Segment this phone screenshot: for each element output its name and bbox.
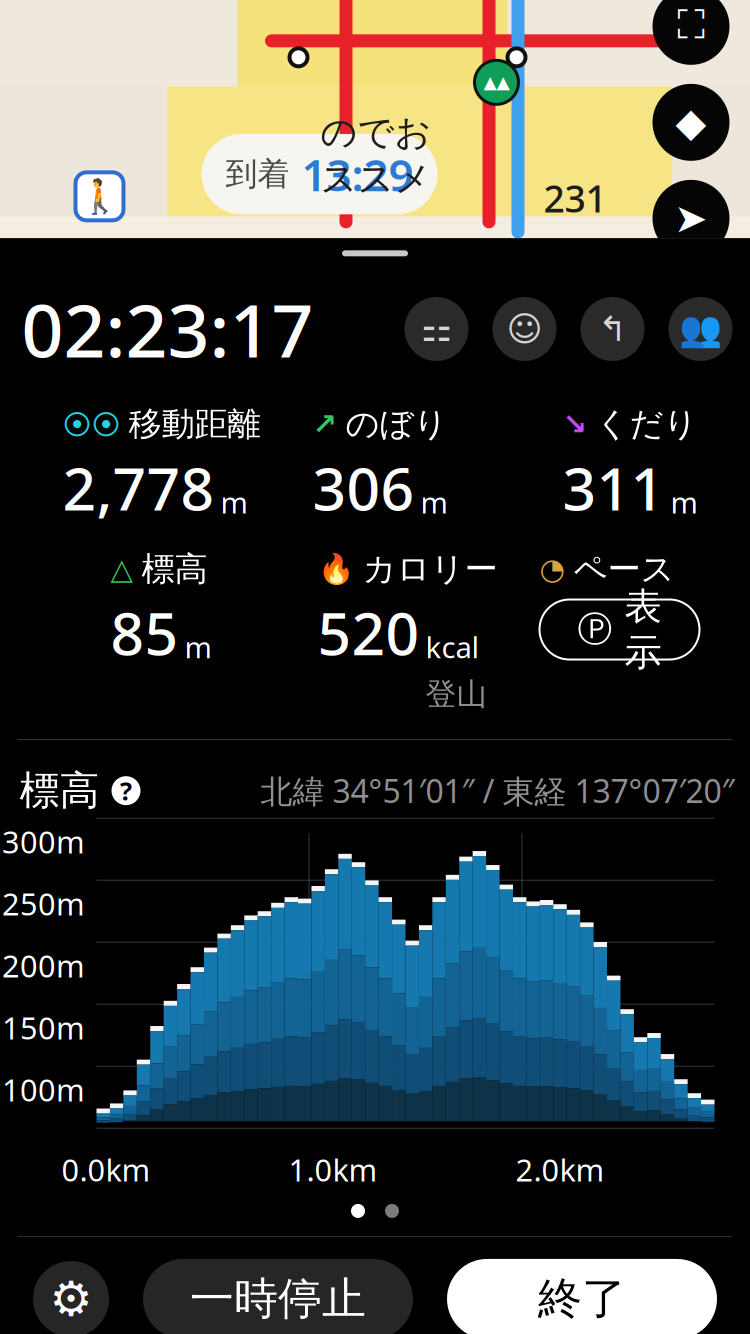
button[interactable]: Ⓟ [539,599,699,659]
button[interactable]: 標高について [111,776,140,805]
staticText: 231 [543,173,606,223]
staticText: 311 [562,449,664,527]
staticText: 02:23:17 [21,280,313,378]
staticText: ペース [573,549,674,589]
staticText: ▲▲ [483,72,509,92]
staticText: 到着 [225,154,289,194]
staticText: ☺ [506,309,542,349]
staticText: m [220,483,247,522]
staticText: カロリー [362,549,497,589]
staticText: ↗ [312,408,337,441]
staticText: 表示 [624,584,661,675]
staticText: ↰ [598,309,627,349]
staticText: ↘ [562,408,587,441]
staticText: 150m [2,1007,85,1048]
button[interactable]: Members [668,297,732,361]
button[interactable]: Recenter [652,0,729,65]
button[interactable]: 一時停止 [143,1259,413,1334]
button[interactable]: 設定 [33,1261,109,1334]
staticText: m [184,627,211,666]
staticText: 👥 [679,309,722,349]
staticText: 306 [312,449,414,527]
staticText: 🔥 [317,552,354,586]
staticText: ➤ [674,196,708,241]
staticText: のでお [320,110,431,154]
staticText: ⛶ [677,7,705,46]
staticText: ⦿⦿ [62,410,120,438]
staticText: 一時停止 [190,1272,366,1326]
staticText: くだり [595,404,697,445]
staticText: 200m [2,945,85,986]
staticText: 85 [110,593,178,671]
staticText: △ [110,552,133,586]
button[interactable]: Stickers [492,297,556,361]
staticText: m [420,483,447,522]
staticText: ◔ [539,552,565,586]
staticText: kcal [425,627,479,666]
button[interactable]: Route off [580,297,644,361]
staticText: Ⓟ [577,608,612,651]
staticText: 0.0km [61,1149,150,1190]
button[interactable]: 終了 [447,1259,717,1334]
staticText: 標高 [19,766,99,815]
staticText: 100m [2,1069,85,1110]
staticText: 北緯 34°51′01″ / 東経 137°07′20″ [260,769,734,812]
staticText: 520 [317,593,419,671]
staticText: ⚏ [421,309,452,349]
staticText: 2,778 [62,449,214,527]
staticText: ◆ [675,100,706,145]
button[interactable]: Map layers [652,84,729,161]
staticText: のぼり [345,404,447,445]
staticText: 終了 [538,1272,626,1326]
staticText: 移動距離 [128,404,260,445]
staticText: 250m [2,883,85,924]
staticText: 300m [2,821,85,862]
staticText: ススメ [320,157,431,201]
button[interactable]: Waypoints [404,297,468,361]
staticText: ? [120,774,132,807]
button[interactable]: Locate me [652,180,729,257]
staticText: 1.0km [288,1149,377,1190]
staticText: ⚙ [49,1272,92,1326]
staticText: 登山 [425,675,487,713]
staticText: 🚶 [78,177,120,215]
staticText: 13:29 [301,145,413,203]
staticText: 標高 [141,549,207,589]
staticText: m [670,483,697,522]
staticText: 2.0km [515,1149,604,1190]
